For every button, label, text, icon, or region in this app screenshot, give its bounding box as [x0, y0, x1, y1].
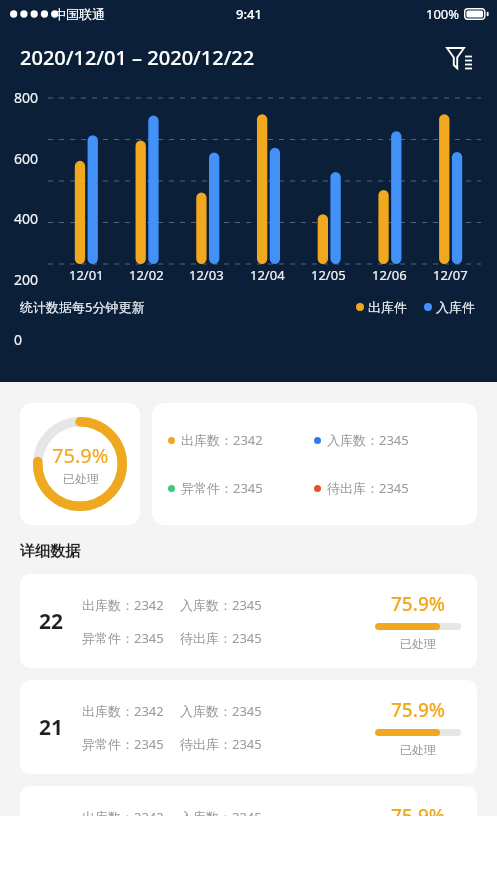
staticText: 12/05 [311, 266, 346, 284]
staticText: 400 [14, 209, 39, 228]
staticText: 已处理 [400, 742, 436, 757]
staticText: 待出库：2345 [180, 735, 262, 753]
staticText: 21 [39, 713, 64, 742]
staticText: 75.9% [391, 697, 445, 723]
staticText: 待出库：2345 [180, 629, 262, 647]
staticText: 12/02 [129, 266, 164, 284]
staticText: 出库件 [368, 299, 407, 315]
button[interactable]: 75.9% [20, 403, 140, 525]
staticText: 800 [14, 88, 39, 107]
staticText: 入库数：2345 [180, 596, 262, 614]
button[interactable]: Filter [437, 35, 481, 79]
staticText: 出库数：2342 [82, 808, 164, 816]
staticText: 9:41 [236, 5, 262, 23]
staticText: 入库数：2345 [180, 702, 262, 720]
staticText: 出库数：2342 [181, 431, 263, 449]
button[interactable]: 22 [20, 574, 477, 668]
staticText: 12/06 [372, 266, 407, 284]
button[interactable]: 21 [20, 680, 477, 774]
staticText: 中国联通 [53, 6, 105, 22]
staticText: 异常件：2345 [82, 735, 164, 753]
staticText: 12/03 [189, 266, 224, 284]
staticText: 统计数据每5分钟更新 [20, 298, 145, 316]
staticText: 入库数：2345 [327, 431, 409, 449]
staticText: 100% [426, 5, 460, 23]
staticText: 2020/12/01 – 2020/12/22 [20, 44, 255, 71]
staticText: 详细数据 [20, 542, 80, 561]
staticText: 0 [14, 330, 23, 349]
staticText: 12/01 [69, 266, 104, 284]
staticText: 已处理 [63, 471, 99, 486]
staticText: 12/07 [433, 266, 468, 284]
staticText: 75.9% [391, 591, 445, 617]
button[interactable]: 出库数：2342 [152, 403, 477, 525]
staticText: 出库数：2342 [82, 596, 164, 614]
staticText: 待出库：2345 [327, 479, 409, 497]
staticText: 12/04 [250, 266, 285, 284]
staticText: 75.9% [52, 442, 109, 469]
staticText: 入库数：2345 [180, 808, 262, 816]
staticText: 200 [14, 270, 39, 289]
staticText: 75.9% [391, 803, 445, 816]
staticText: 600 [14, 149, 39, 168]
staticText: 异常件：2345 [82, 629, 164, 647]
staticText: 22 [39, 607, 64, 636]
staticText: 已处理 [400, 636, 436, 651]
button[interactable]: 20 [20, 786, 477, 816]
staticText: 异常件：2345 [181, 479, 263, 497]
staticText: 出库数：2342 [82, 702, 164, 720]
staticText: 入库件 [436, 299, 475, 315]
